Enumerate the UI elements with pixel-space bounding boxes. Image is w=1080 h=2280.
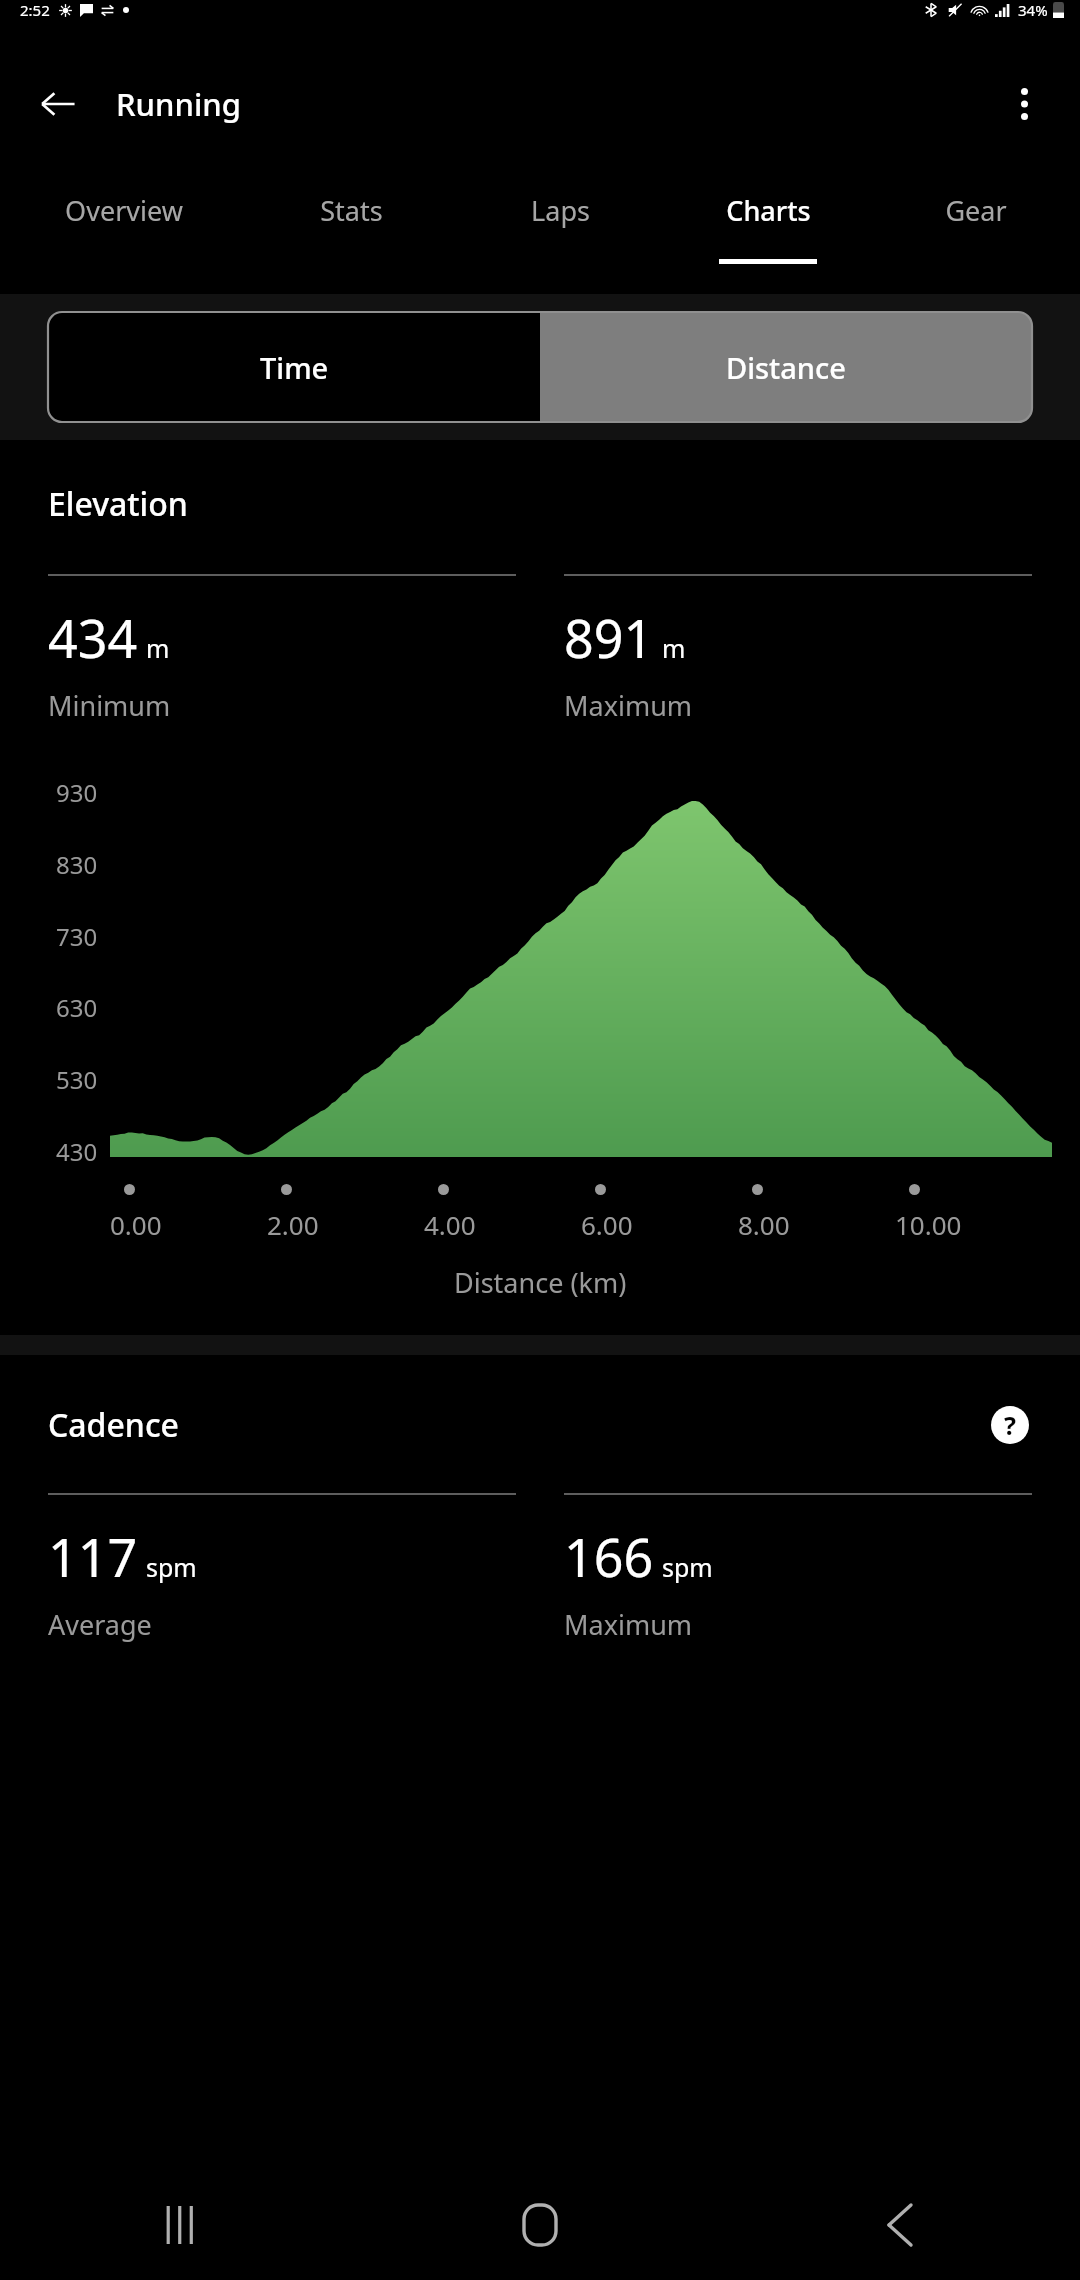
staticText: 730 xyxy=(56,920,98,953)
staticText: spm xyxy=(662,1550,713,1584)
staticText: Cadence xyxy=(48,1403,179,1447)
staticText: 34% xyxy=(1018,0,1048,20)
button[interactable]: Back xyxy=(720,2170,1080,2280)
staticText: Gear xyxy=(945,192,1007,229)
staticText: 2.00 xyxy=(267,1207,319,1242)
staticText: m xyxy=(662,631,686,665)
staticText: 0.00 xyxy=(110,1207,162,1242)
staticText: 530 xyxy=(56,1063,98,1096)
staticText: 166 xyxy=(564,1521,654,1592)
button[interactable]: Help about cadence xyxy=(984,1399,1036,1451)
staticText: Minimum xyxy=(48,687,171,724)
staticText: 891 xyxy=(564,602,654,673)
staticText: 8.00 xyxy=(738,1207,790,1242)
staticText: Overview xyxy=(65,192,183,229)
button[interactable]: More options xyxy=(988,68,1060,140)
staticText: 830 xyxy=(56,848,98,881)
staticText: Time xyxy=(260,348,329,387)
staticText: Average xyxy=(48,1606,152,1643)
button[interactable]: Gear xyxy=(872,164,1080,294)
staticText: ? xyxy=(1004,1408,1016,1442)
staticText: Charts xyxy=(726,192,811,229)
button[interactable]: Recent apps xyxy=(0,2170,360,2280)
button[interactable]: Overview xyxy=(0,164,247,294)
staticText: 10.00 xyxy=(895,1207,962,1242)
staticText: Stats xyxy=(320,192,383,229)
staticText: Running xyxy=(116,83,241,125)
staticText: 4.00 xyxy=(424,1207,476,1242)
button[interactable]: Home xyxy=(360,2170,720,2280)
button[interactable]: Charts xyxy=(664,164,872,294)
staticText: Laps xyxy=(531,192,590,229)
button[interactable]: Distance xyxy=(540,312,1032,422)
staticText: Maximum xyxy=(564,1606,693,1643)
staticText: 434 xyxy=(48,602,138,673)
button[interactable]: Back xyxy=(22,68,94,140)
staticText: 930 xyxy=(56,776,98,809)
staticText: Elevation xyxy=(48,482,188,526)
button[interactable]: Stats xyxy=(247,164,456,294)
button[interactable]: Time xyxy=(48,312,540,422)
staticText: Distance (km) xyxy=(454,1264,627,1301)
staticText: 630 xyxy=(56,991,98,1024)
button[interactable]: Laps xyxy=(456,164,664,294)
staticText: Maximum xyxy=(564,687,693,724)
staticText: m xyxy=(146,631,170,665)
staticText: spm xyxy=(146,1550,197,1584)
staticText: 6.00 xyxy=(581,1207,633,1242)
staticText: 2:52 xyxy=(20,0,50,20)
staticText: 430 xyxy=(56,1135,98,1168)
staticText: 117 xyxy=(48,1521,138,1592)
staticText: Distance xyxy=(726,348,846,387)
